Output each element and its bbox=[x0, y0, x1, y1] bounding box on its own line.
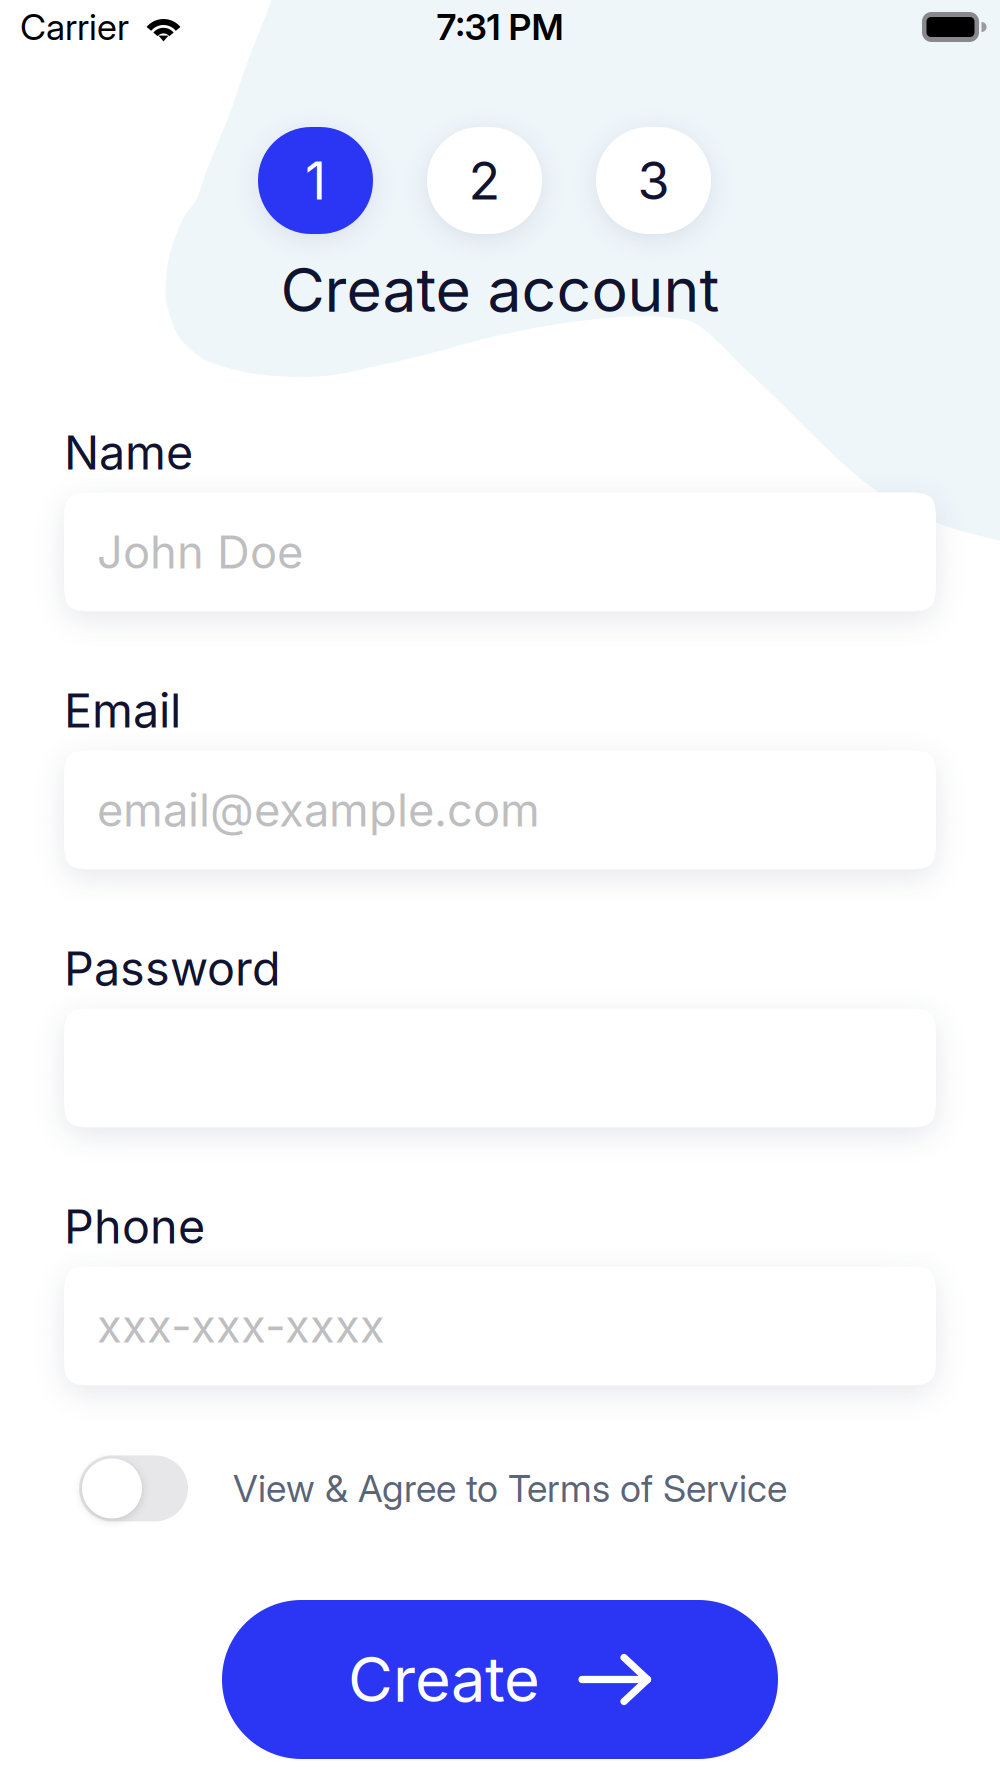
button[interactable]: Step 1 bbox=[258, 127, 373, 234]
button[interactable]: Step 2 bbox=[427, 127, 542, 234]
staticText: 3 bbox=[637, 149, 669, 212]
button[interactable]: Create bbox=[222, 1600, 778, 1759]
staticText: Carrier bbox=[20, 5, 129, 49]
button[interactable]: View & Agree to Terms of Service bbox=[79, 1455, 960, 1521]
button[interactable]: Email bbox=[64, 750, 936, 869]
staticText: 7:31 PM bbox=[436, 5, 563, 49]
staticText: email@example.com bbox=[97, 782, 540, 837]
staticText: Create bbox=[348, 1642, 540, 1717]
staticText: xxx-xxx-xxxx bbox=[97, 1298, 385, 1353]
staticText: 2 bbox=[468, 149, 500, 212]
staticText: John Doe bbox=[97, 524, 303, 579]
button[interactable]: Phone bbox=[64, 1266, 936, 1385]
staticText: 1 bbox=[305, 149, 326, 212]
staticText: View & Agree to Terms of Service bbox=[233, 1466, 787, 1511]
button[interactable]: Step 3 bbox=[596, 127, 711, 234]
staticText: Name bbox=[64, 424, 193, 481]
staticText: Create account bbox=[280, 253, 719, 326]
button[interactable]: Name bbox=[64, 492, 936, 611]
staticText: Email bbox=[64, 682, 181, 739]
staticText: Phone bbox=[64, 1198, 205, 1255]
staticText: Password bbox=[64, 940, 281, 997]
